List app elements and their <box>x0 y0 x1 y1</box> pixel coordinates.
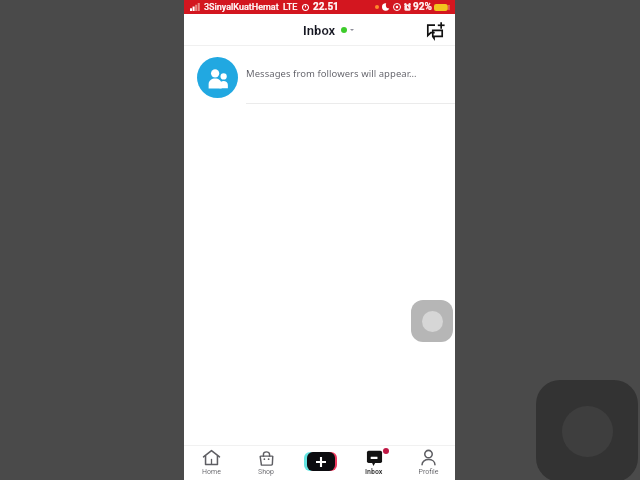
button[interactable]: Profile <box>401 444 455 480</box>
button[interactable]: Create <box>304 452 337 471</box>
button[interactable]: New message <box>423 18 447 42</box>
staticText: Profile <box>418 468 439 476</box>
staticText: Inbox <box>365 468 383 476</box>
staticText: Home <box>202 468 221 476</box>
button[interactable]: Screen recorder <box>411 300 453 342</box>
staticText: Inbox <box>303 23 336 38</box>
staticText: 3SinyalKuatHemat <box>204 2 279 13</box>
button[interactable]: Inbox <box>347 444 401 480</box>
staticText: Shop <box>258 468 274 476</box>
button[interactable]: Shop <box>239 444 293 480</box>
staticText: 22.51 <box>313 1 339 13</box>
button[interactable]: Home <box>184 444 239 480</box>
button[interactable]: Messages from followers will appear… <box>184 45 455 103</box>
staticText: Messages from followers will appear… <box>246 67 417 80</box>
staticText: LTE <box>283 2 298 13</box>
staticText: 92% <box>413 1 432 13</box>
